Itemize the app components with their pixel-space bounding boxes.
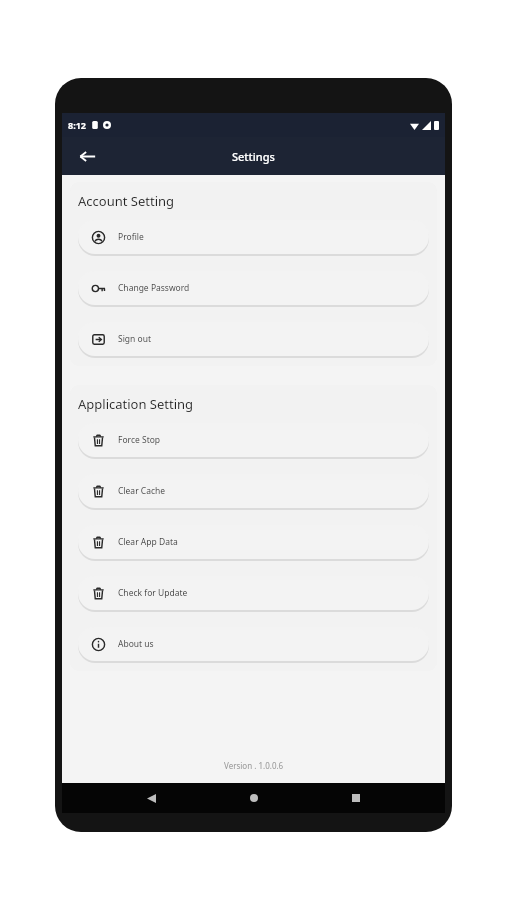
button[interactable]: Home (241, 785, 267, 811)
staticText: Force Stop (118, 434, 161, 446)
staticText: Account Setting (78, 192, 175, 210)
staticText: Version . 1.0.0.6 (224, 760, 284, 771)
button[interactable]: Clear Cache (78, 474, 429, 508)
button[interactable]: Recent apps (343, 785, 369, 811)
staticText: 8:12 (68, 119, 86, 131)
button[interactable]: Back (138, 785, 164, 811)
button[interactable]: Clear App Data (78, 525, 429, 559)
button[interactable]: Change Password (78, 271, 429, 305)
staticText: Check for Update (118, 587, 188, 599)
staticText: Application Setting (78, 395, 194, 413)
button[interactable]: Profile (78, 220, 429, 254)
staticText: Clear App Data (118, 536, 178, 548)
staticText: Profile (118, 231, 144, 243)
button[interactable]: Force Stop (78, 423, 429, 457)
staticText: Sign out (118, 333, 152, 345)
button[interactable]: Back (72, 141, 102, 171)
staticText: About us (118, 638, 154, 650)
button[interactable]: Sign out (78, 322, 429, 356)
staticText: Settings (232, 149, 275, 164)
staticText: Clear Cache (118, 485, 166, 497)
button[interactable]: Check for Update (78, 576, 429, 610)
button[interactable]: About us (78, 627, 429, 661)
staticText: Change Password (118, 282, 190, 294)
